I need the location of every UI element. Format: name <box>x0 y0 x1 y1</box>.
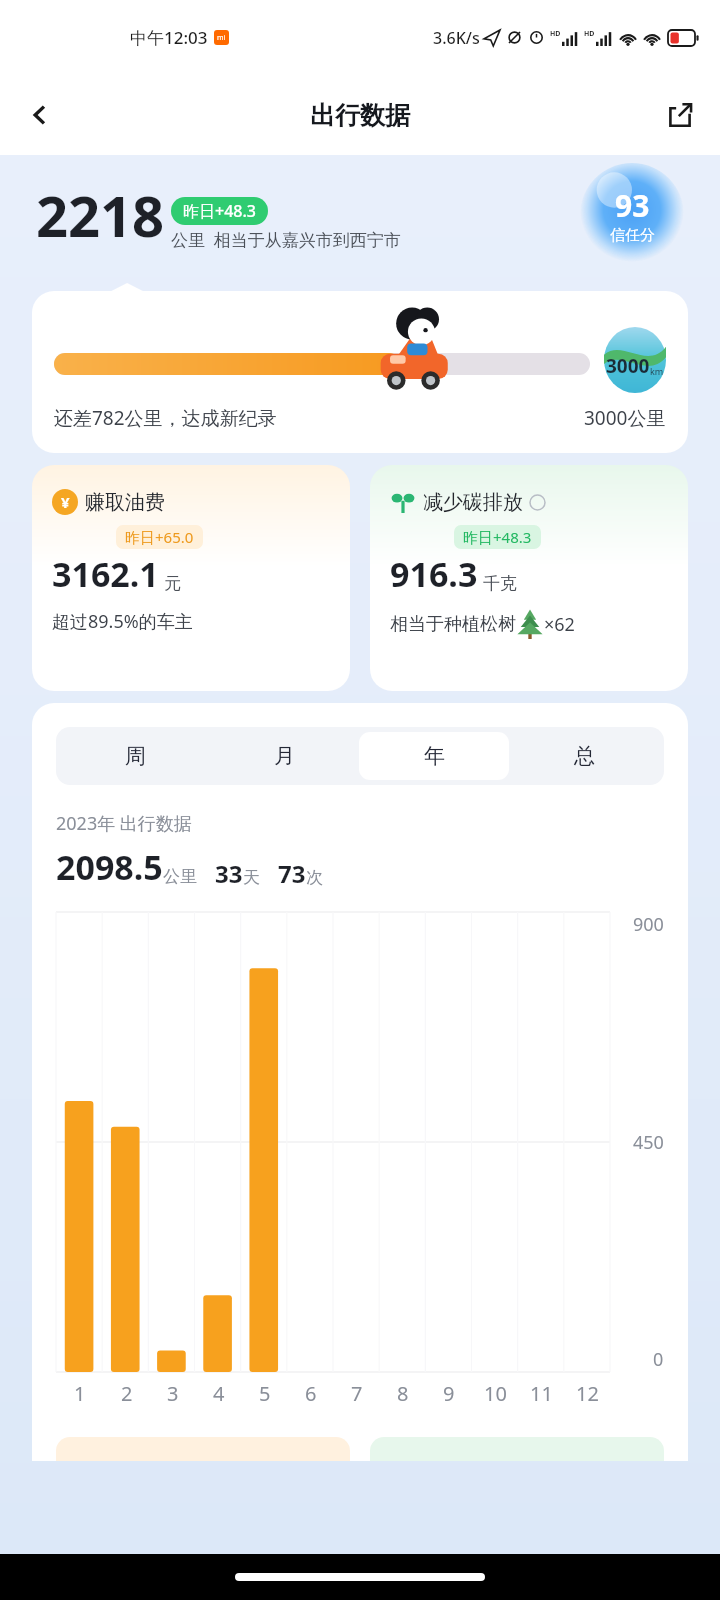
staticText: 0 <box>653 1347 664 1372</box>
staticText: HD <box>550 29 561 39</box>
staticText: 5 <box>259 1380 271 1407</box>
staticText: 昨日+48.3 <box>183 200 256 222</box>
staticText: 33 <box>215 857 243 890</box>
staticText: 2023年 出行数据 <box>56 811 192 836</box>
staticText: 年 <box>424 743 445 769</box>
staticText: 12 <box>576 1380 599 1407</box>
staticText: 减少碳排放 <box>423 490 523 515</box>
staticText: 信任分 <box>610 226 655 245</box>
staticText: 还差782公里，达成新纪录 <box>54 405 277 431</box>
staticText: 公里 相当于从嘉兴市到西宁市 <box>171 228 401 251</box>
staticText: 次 <box>306 867 323 888</box>
staticText: 3000 <box>606 353 650 379</box>
staticText: 7 <box>351 1380 363 1407</box>
staticText: 昨日+65.0 <box>125 527 194 547</box>
staticText: 10 <box>484 1380 507 1407</box>
button[interactable]: 93 <box>580 163 684 267</box>
staticText: 超过89.5%的车主 <box>52 609 193 634</box>
staticText: 中午12:03 <box>130 26 208 49</box>
staticText: 9 <box>443 1380 455 1407</box>
staticText: 2098.5 <box>56 844 163 890</box>
staticText: 3162.1 <box>52 551 159 597</box>
staticText: 1 <box>74 1380 86 1407</box>
button[interactable]: 月 <box>210 732 359 780</box>
staticText: 900 <box>633 912 664 937</box>
staticText: 450 <box>633 1130 664 1155</box>
button[interactable]: 年 <box>359 732 509 780</box>
staticText: HD <box>584 29 595 39</box>
staticText: 916.3 <box>390 551 478 597</box>
staticText: 周 <box>125 743 146 769</box>
button[interactable]: 周 <box>61 732 210 780</box>
staticText: 相当于种植松树 <box>390 613 516 636</box>
staticText: 3000公里 <box>584 405 666 431</box>
staticText: 天 <box>243 867 260 888</box>
staticText: 93 <box>615 185 650 226</box>
staticText: 73 <box>278 857 306 890</box>
staticText: 6 <box>305 1380 317 1407</box>
button[interactable]: 总 <box>509 732 659 780</box>
staticText: ¥ <box>61 492 70 512</box>
staticText: 2218 <box>36 177 165 253</box>
staticText: 11 <box>530 1380 553 1407</box>
staticText: 总 <box>574 743 595 769</box>
button[interactable]: Share <box>652 87 708 143</box>
staticText: 2 <box>121 1380 133 1407</box>
staticText: 元 <box>164 573 181 594</box>
staticText: 4 <box>213 1380 225 1407</box>
staticText: km <box>650 365 664 377</box>
button[interactable]: Back <box>12 87 68 143</box>
staticText: ×62 <box>544 612 575 637</box>
button[interactable]: 减少碳排放 <box>370 465 688 691</box>
staticText: 昨日+48.3 <box>463 527 532 547</box>
staticText: 出行数据 <box>310 100 410 131</box>
staticText: 赚取油费 <box>85 490 165 515</box>
staticText: 3.6K/s <box>433 27 480 49</box>
button[interactable]: ¥ <box>32 465 350 691</box>
staticText: 千克 <box>483 573 517 594</box>
staticText: 公里 <box>163 866 197 887</box>
staticText: mi <box>217 33 226 43</box>
button[interactable]: 3000 <box>32 291 688 453</box>
staticText: 月 <box>274 743 295 769</box>
staticText: 8 <box>397 1380 409 1407</box>
staticText: 3 <box>167 1380 179 1407</box>
